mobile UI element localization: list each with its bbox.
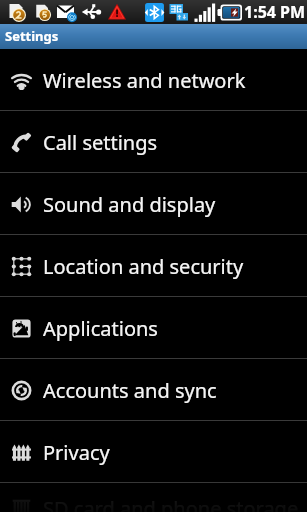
staticText: Sound and display [43, 191, 216, 218]
button[interactable]: SD card and phone storage [0, 483, 307, 512]
staticText: Applications [43, 315, 158, 342]
staticText: Privacy [43, 439, 110, 466]
staticText: Location and security [43, 253, 244, 280]
button[interactable]: Privacy [0, 421, 307, 483]
staticText: Settings [5, 27, 59, 45]
button[interactable]: Wireless and network [0, 49, 307, 111]
staticText: SD card and phone storage [43, 495, 299, 512]
staticText: Wireless and network [43, 67, 246, 94]
button[interactable]: Accounts and sync [0, 359, 307, 421]
staticText: Accounts and sync [43, 377, 217, 404]
staticText: Call settings [43, 129, 158, 156]
button[interactable]: Sound and display [0, 173, 307, 235]
staticText: 1:54 PM [244, 1, 306, 23]
button[interactable]: Applications [0, 297, 307, 359]
button[interactable]: Location and security [0, 235, 307, 297]
button[interactable]: Call settings [0, 111, 307, 173]
